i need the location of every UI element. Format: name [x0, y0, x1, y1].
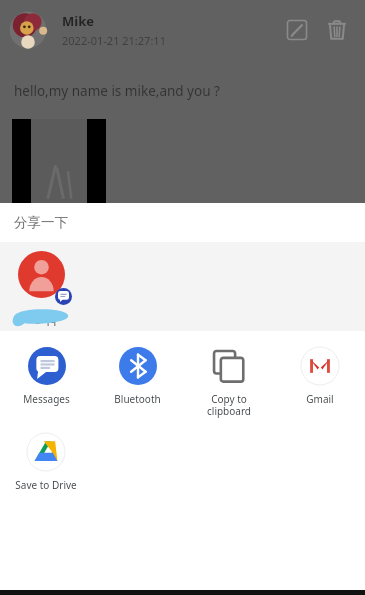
button[interactable]: Delete: [317, 10, 357, 50]
button[interactable]: Gmail: [274, 338, 365, 424]
staticText: 2022-01-21 21:27:11: [62, 33, 166, 48]
staticText: l@qq: [30, 311, 57, 326]
staticText: 分享一下: [14, 214, 68, 231]
button[interactable]: Edit: [277, 10, 317, 50]
staticText: hello,my name is mike,and you ?: [14, 82, 220, 100]
button[interactable]: l@qq: [7, 242, 83, 331]
staticText: Gmail: [306, 392, 334, 406]
button[interactable]: Copy to clipboard: [183, 338, 274, 424]
button[interactable]: Bluetooth: [92, 338, 183, 424]
staticText: Bluetooth: [114, 392, 161, 406]
staticText: Mike: [62, 12, 94, 30]
staticText: Save to Drive: [15, 478, 77, 492]
staticText: Messages: [23, 392, 70, 406]
button[interactable]: Save to Drive: [0, 424, 91, 510]
staticText: Copy to clipboard: [207, 392, 251, 418]
button[interactable]: Messages: [0, 338, 92, 424]
